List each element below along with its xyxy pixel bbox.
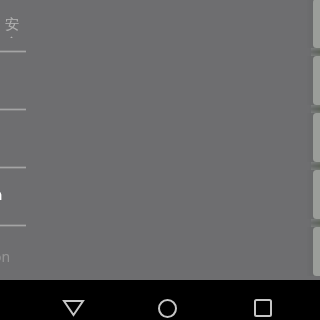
staticText: h bbox=[0, 185, 2, 203]
staticText: on bbox=[0, 247, 11, 266]
staticText: 安全 bbox=[0, 16, 19, 38]
button[interactable]: 安全 bbox=[0, 16, 19, 38]
button[interactable]: Home bbox=[143, 288, 191, 320]
button[interactable]: Back bbox=[49, 288, 97, 320]
button[interactable]: Open card bbox=[305, 170, 320, 219]
button[interactable]: Open card bbox=[305, 227, 320, 276]
button[interactable]: Recent apps bbox=[239, 288, 287, 320]
button[interactable]: Open card bbox=[305, 56, 320, 105]
button[interactable]: Open card bbox=[305, 113, 320, 162]
button[interactable]: Open card bbox=[305, 0, 320, 48]
button[interactable]: h bbox=[0, 185, 2, 203]
button[interactable]: on bbox=[0, 245, 11, 267]
